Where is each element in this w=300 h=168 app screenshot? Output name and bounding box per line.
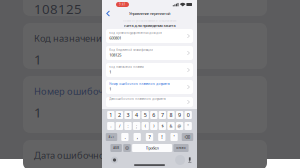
- staticText: ": [187, 123, 189, 129]
- staticText: ⌫: [184, 135, 190, 139]
- button[interactable]: ": [185, 122, 192, 130]
- button[interactable]: 3: [124, 111, 132, 119]
- button[interactable]: Код назначения платежа: [106, 63, 193, 77]
- button[interactable]: Код органа государственных доходов: [106, 29, 193, 43]
- button[interactable]: ☺: [123, 144, 131, 152]
- staticText: 0: [187, 111, 190, 119]
- staticText: Дата ошибочного пла: [34, 149, 133, 161]
- button[interactable]: Номер ошибочного платежного документа: [106, 80, 193, 94]
- staticText: @: [178, 123, 182, 129]
- button[interactable]: 8: [167, 111, 175, 119]
- staticText: -: [110, 123, 111, 129]
- staticText: #+=: [108, 135, 114, 139]
- button[interactable]: Пробел: [132, 144, 172, 152]
- staticText: ): [153, 123, 154, 129]
- button[interactable]: Switch keyboard: [111, 156, 118, 163]
- button[interactable]: 1: [107, 111, 114, 119]
- staticText: 108125: [109, 52, 121, 58]
- staticText: счета для проведения зачета: [123, 23, 175, 28]
- button[interactable]: ,: [134, 133, 141, 141]
- button[interactable]: ;: [133, 122, 140, 130]
- button[interactable]: $: [159, 122, 166, 130]
- button[interactable]: .: [121, 133, 128, 141]
- staticText: ,: [137, 133, 138, 141]
- staticText: АБВ: [113, 146, 119, 150]
- staticText: 7: [161, 111, 164, 119]
- button[interactable]: Back: [102, 9, 114, 18]
- staticText: 1: [109, 86, 111, 92]
- button[interactable]: Готово: [173, 144, 189, 152]
- staticText: ?: [148, 133, 150, 141]
- staticText: 8: [169, 111, 172, 119]
- button[interactable]: 5: [142, 111, 149, 119]
- button[interactable]: 6: [150, 111, 157, 119]
- staticText: Номер ошибочного: [34, 85, 125, 97]
- button[interactable]: 9: [176, 111, 183, 119]
- staticText: !: [161, 133, 162, 141]
- staticText: Дата ошибочного платежного документа: [109, 97, 165, 101]
- staticText: .: [124, 133, 125, 141]
- button[interactable]: !: [158, 133, 165, 141]
- staticText: (: [145, 123, 146, 129]
- button[interactable]: 4: [133, 111, 140, 119]
- button[interactable]: 0: [185, 111, 192, 119]
- button[interactable]: Emoji: [175, 155, 185, 165]
- button[interactable]: 2: [116, 111, 123, 119]
- staticText: 9:41: [119, 3, 126, 6]
- staticText: 108125: [34, 0, 82, 18]
- staticText: ': [174, 133, 175, 141]
- staticText: платы от уплачиваемых в специальные: [123, 19, 176, 22]
- button[interactable]: ⌫: [182, 133, 193, 141]
- staticText: Управление переплатой: [129, 11, 170, 16]
- staticText: 1: [109, 111, 112, 119]
- staticText: 5: [144, 111, 147, 119]
- staticText: 3: [126, 111, 129, 119]
- staticText: 1: [109, 69, 111, 75]
- button[interactable]: @: [176, 122, 183, 130]
- button[interactable]: Dictate: [188, 157, 192, 163]
- staticText: Номер ошибочного платежного документа: [109, 82, 169, 86]
- staticText: ;: [136, 123, 137, 129]
- button[interactable]: Дата ошибочного платежного документа: [106, 97, 193, 107]
- staticText: 6: [152, 111, 155, 119]
- button[interactable]: &: [167, 122, 175, 130]
- button[interactable]: ': [170, 133, 178, 141]
- button[interactable]: АБВ: [110, 144, 122, 152]
- button[interactable]: /: [116, 122, 123, 130]
- button[interactable]: -: [107, 122, 114, 130]
- staticText: 2: [118, 111, 121, 119]
- staticText: 9: [178, 111, 181, 119]
- button[interactable]: 7: [159, 111, 166, 119]
- staticText: 1: [34, 103, 42, 121]
- staticText: Код назначения платежа: [34, 32, 146, 44]
- staticText: &: [169, 123, 172, 129]
- staticText: Код назначения платежа: [109, 65, 143, 69]
- staticText: Код органа государственных доходов: [109, 31, 162, 35]
- staticText: Готово: [176, 146, 186, 150]
- button[interactable]: Код бюджетной классификации: [106, 46, 193, 60]
- staticText: Пробел: [146, 145, 159, 151]
- button[interactable]: ?: [146, 133, 153, 141]
- button[interactable]: ): [150, 122, 157, 130]
- staticText: ☺: [125, 146, 129, 150]
- staticText: $: [161, 123, 163, 129]
- button[interactable]: (: [142, 122, 149, 130]
- staticText: Код бюджетной классификации: [109, 48, 153, 52]
- button[interactable]: #+=: [106, 133, 117, 141]
- staticText: 600801: [109, 35, 121, 41]
- staticText: 4: [135, 111, 138, 119]
- staticText: /: [119, 123, 120, 129]
- button[interactable]: :: [124, 122, 132, 130]
- staticText: 1: [34, 50, 42, 68]
